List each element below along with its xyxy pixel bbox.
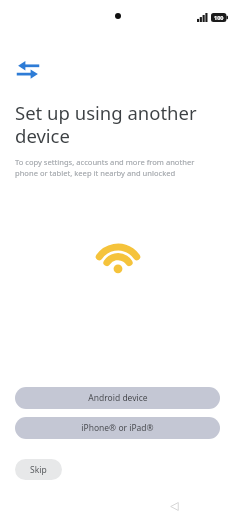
staticText: 100 xyxy=(214,14,224,21)
button[interactable]: Transfer data xyxy=(15,58,41,84)
staticText: To copy settings, accounts and more from… xyxy=(15,157,215,178)
button[interactable]: Back xyxy=(165,497,183,515)
button[interactable]: Android device xyxy=(15,387,220,409)
staticText: Skip xyxy=(30,464,47,476)
button[interactable]: Skip xyxy=(15,459,62,480)
staticText: iPhone® or iPad® xyxy=(81,422,154,434)
staticText: Android device xyxy=(88,392,148,404)
staticText: Set up using another device xyxy=(15,100,223,148)
button[interactable]: iPhone® or iPad® xyxy=(15,417,220,439)
